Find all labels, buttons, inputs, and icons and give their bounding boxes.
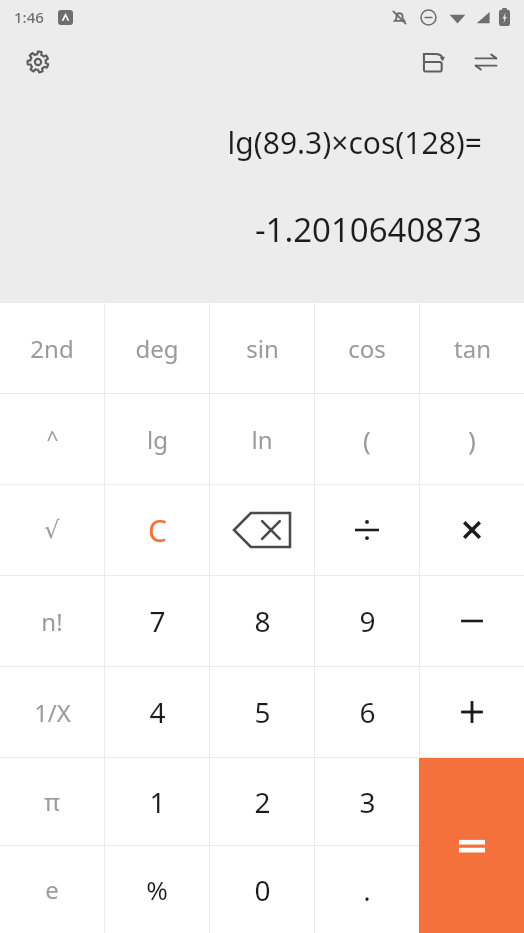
staticText: 1	[149, 783, 166, 821]
button[interactable]: C	[105, 485, 209, 575]
button[interactable]: Minus	[420, 576, 524, 666]
staticText: tan	[454, 332, 491, 365]
staticText: .	[363, 871, 371, 909]
staticText: sin	[246, 332, 279, 365]
staticText: 1:46	[14, 7, 44, 27]
button[interactable]: 4	[105, 667, 209, 757]
staticText: 9	[359, 602, 376, 640]
button[interactable]: 3	[315, 758, 419, 845]
button[interactable]: Switch mode	[466, 42, 506, 82]
staticText: ^	[46, 425, 59, 454]
button[interactable]: √	[0, 485, 104, 575]
button[interactable]: 8	[210, 576, 314, 666]
button[interactable]: (	[315, 394, 419, 484]
staticText: 6	[359, 693, 376, 731]
staticText: 8	[254, 602, 271, 640]
staticText: 4	[149, 693, 166, 731]
staticText: 2nd	[30, 332, 74, 365]
button[interactable]: %	[105, 846, 209, 933]
staticText: %	[146, 872, 168, 907]
staticText: )	[468, 422, 476, 457]
button[interactable]: cos	[315, 303, 419, 393]
button[interactable]: 2	[210, 758, 314, 845]
button[interactable]: n!	[0, 576, 104, 666]
button[interactable]: Divide	[315, 485, 419, 575]
button[interactable]: .	[315, 846, 419, 933]
button[interactable]: deg	[105, 303, 209, 393]
staticText: 2	[254, 783, 271, 821]
button[interactable]: 5	[210, 667, 314, 757]
other: Plus	[459, 699, 485, 725]
button[interactable]: )	[420, 394, 524, 484]
staticText: C	[148, 510, 167, 551]
button[interactable]: 1	[105, 758, 209, 845]
button[interactable]: lg	[105, 394, 209, 484]
staticText: lg(89.3)×cos(128)=	[227, 122, 482, 163]
button[interactable]: Plus	[420, 667, 524, 757]
other: Backspace	[234, 513, 290, 547]
button[interactable]: tan	[420, 303, 524, 393]
button[interactable]: Settings	[18, 42, 58, 82]
button[interactable]: 9	[315, 576, 419, 666]
staticText: 5	[254, 693, 271, 731]
button[interactable]: Backspace	[210, 485, 314, 575]
button[interactable]: π	[0, 758, 104, 845]
staticText: √	[44, 516, 60, 544]
button[interactable]: ln	[210, 394, 314, 484]
button[interactable]: 2nd	[0, 303, 104, 393]
button[interactable]: 1/X	[0, 667, 104, 757]
button[interactable]: ^	[0, 394, 104, 484]
staticText: ln	[251, 423, 273, 456]
button[interactable]: Rotate screen	[414, 42, 454, 82]
staticText: e	[45, 873, 59, 906]
staticText: 0	[254, 871, 271, 909]
staticText: 1/X	[34, 696, 71, 729]
staticText: (	[363, 422, 371, 457]
button[interactable]: 7	[105, 576, 209, 666]
other: Divide	[352, 515, 382, 545]
staticText: n!	[41, 605, 63, 638]
button[interactable]: e	[0, 846, 104, 933]
staticText: deg	[135, 332, 179, 365]
staticText: π	[44, 785, 60, 818]
button[interactable]: 0	[210, 846, 314, 933]
other: Multiply	[459, 517, 485, 543]
staticText: 7	[149, 602, 166, 640]
button[interactable]: 6	[315, 667, 419, 757]
staticText: -1.2010640873	[254, 207, 482, 252]
button[interactable]: sin	[210, 303, 314, 393]
button[interactable]: Multiply	[420, 485, 524, 575]
staticText: lg	[147, 423, 168, 456]
staticText: cos	[348, 332, 386, 365]
other: Minus	[459, 608, 485, 634]
button[interactable]: Equals	[419, 758, 524, 933]
staticText: 3	[359, 783, 376, 821]
